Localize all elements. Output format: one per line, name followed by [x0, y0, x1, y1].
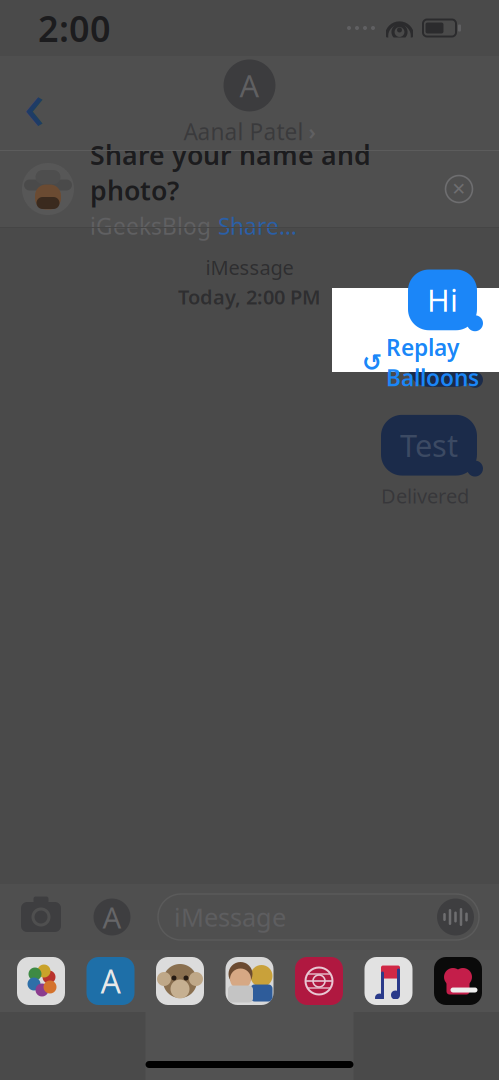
staticText: ✕	[451, 179, 466, 199]
staticText: Hi	[427, 336, 458, 377]
staticText: Hi	[427, 279, 458, 320]
staticText: iMessage	[205, 254, 293, 281]
button[interactable]: Camera	[20, 898, 62, 936]
button[interactable]: iMessage app	[155, 956, 205, 1006]
staticText: A	[100, 960, 120, 1002]
button[interactable]: iMessage	[158, 894, 479, 940]
button[interactable]: iMessage app	[224, 956, 274, 1006]
staticText: Share…	[218, 211, 297, 241]
button[interactable]: iMessage app	[363, 956, 413, 1006]
staticText: 2:00	[38, 4, 111, 52]
staticText: Share your name and photo?	[90, 137, 371, 208]
button[interactable]: ↺	[362, 332, 479, 392]
staticText: Delivered	[381, 483, 469, 509]
staticText: Aanal Patel	[183, 116, 303, 146]
button[interactable]: Share your name and photo?	[0, 150, 499, 228]
staticText: ›	[308, 117, 315, 146]
button[interactable]: Aanal Patel, contact details	[183, 59, 315, 146]
staticText: ↺	[362, 349, 382, 376]
button[interactable]: iMessage app	[294, 956, 344, 1006]
staticText: A	[102, 897, 121, 936]
staticText: iMessage	[174, 900, 286, 934]
button[interactable]: Back	[6, 75, 62, 131]
button[interactable]: iMessage app	[433, 956, 483, 1006]
staticText: A	[239, 65, 259, 106]
staticText: Today, 2:00 PM	[178, 284, 321, 310]
staticText: Replay Balloons	[386, 332, 479, 392]
button[interactable]: iMessage app	[16, 956, 66, 1006]
button[interactable]: Dismiss	[441, 171, 477, 207]
button[interactable]: iMessage app	[85, 956, 135, 1006]
staticText: iGeeksBlog	[90, 211, 211, 241]
button[interactable]: App Store	[92, 897, 132, 937]
staticText: Test	[400, 425, 458, 465]
staticText: ‹	[23, 57, 44, 149]
